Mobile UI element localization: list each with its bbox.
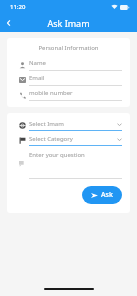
- staticText: Select Category: [29, 135, 117, 143]
- button[interactable]: Select Imam: [15, 120, 122, 131]
- button[interactable]: Email: [15, 74, 122, 86]
- staticText: Personal Information: [15, 44, 122, 52]
- button[interactable]: mobile number: [15, 89, 122, 101]
- staticText: mobile number: [29, 89, 73, 97]
- button[interactable]: Select Category: [15, 135, 122, 146]
- staticText: Enter your question: [29, 151, 85, 159]
- staticText: Ask Imam: [47, 17, 90, 29]
- staticText: 11:20: [10, 3, 26, 11]
- staticText: Ask: [101, 190, 113, 200]
- button[interactable]: Ask: [82, 186, 122, 204]
- staticText: Select Imam: [29, 120, 117, 128]
- staticText: Email: [29, 74, 45, 82]
- button[interactable]: Enter your question: [15, 151, 122, 179]
- button[interactable]: Name: [15, 59, 122, 71]
- staticText: Name: [29, 59, 46, 67]
- button[interactable]: Back: [0, 14, 18, 32]
